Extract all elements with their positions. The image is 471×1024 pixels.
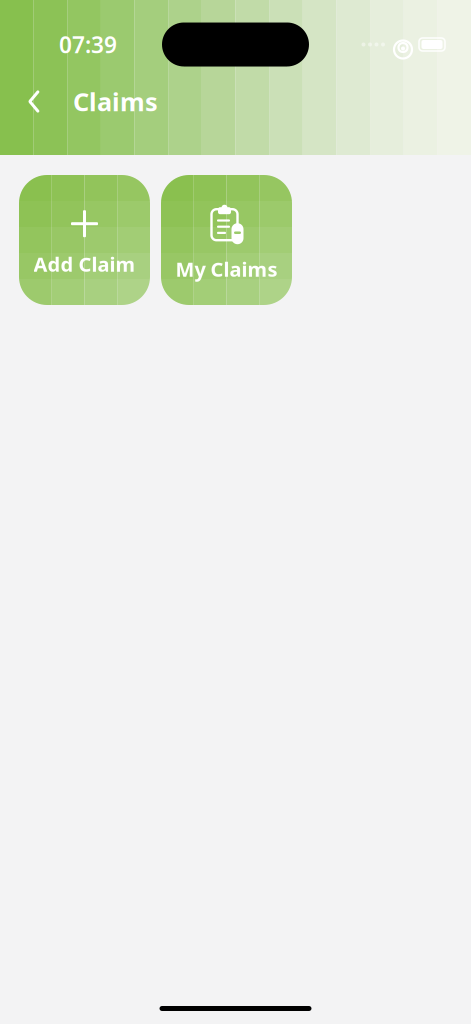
button[interactable]: Add Claim	[19, 175, 150, 305]
button[interactable]: My Claims	[161, 175, 292, 305]
staticText: Claims	[73, 85, 158, 118]
button[interactable]: Back	[16, 81, 52, 121]
staticText: 07:39	[59, 29, 117, 59]
staticText: Add Claim	[33, 251, 135, 277]
staticText: My Claims	[175, 256, 277, 282]
